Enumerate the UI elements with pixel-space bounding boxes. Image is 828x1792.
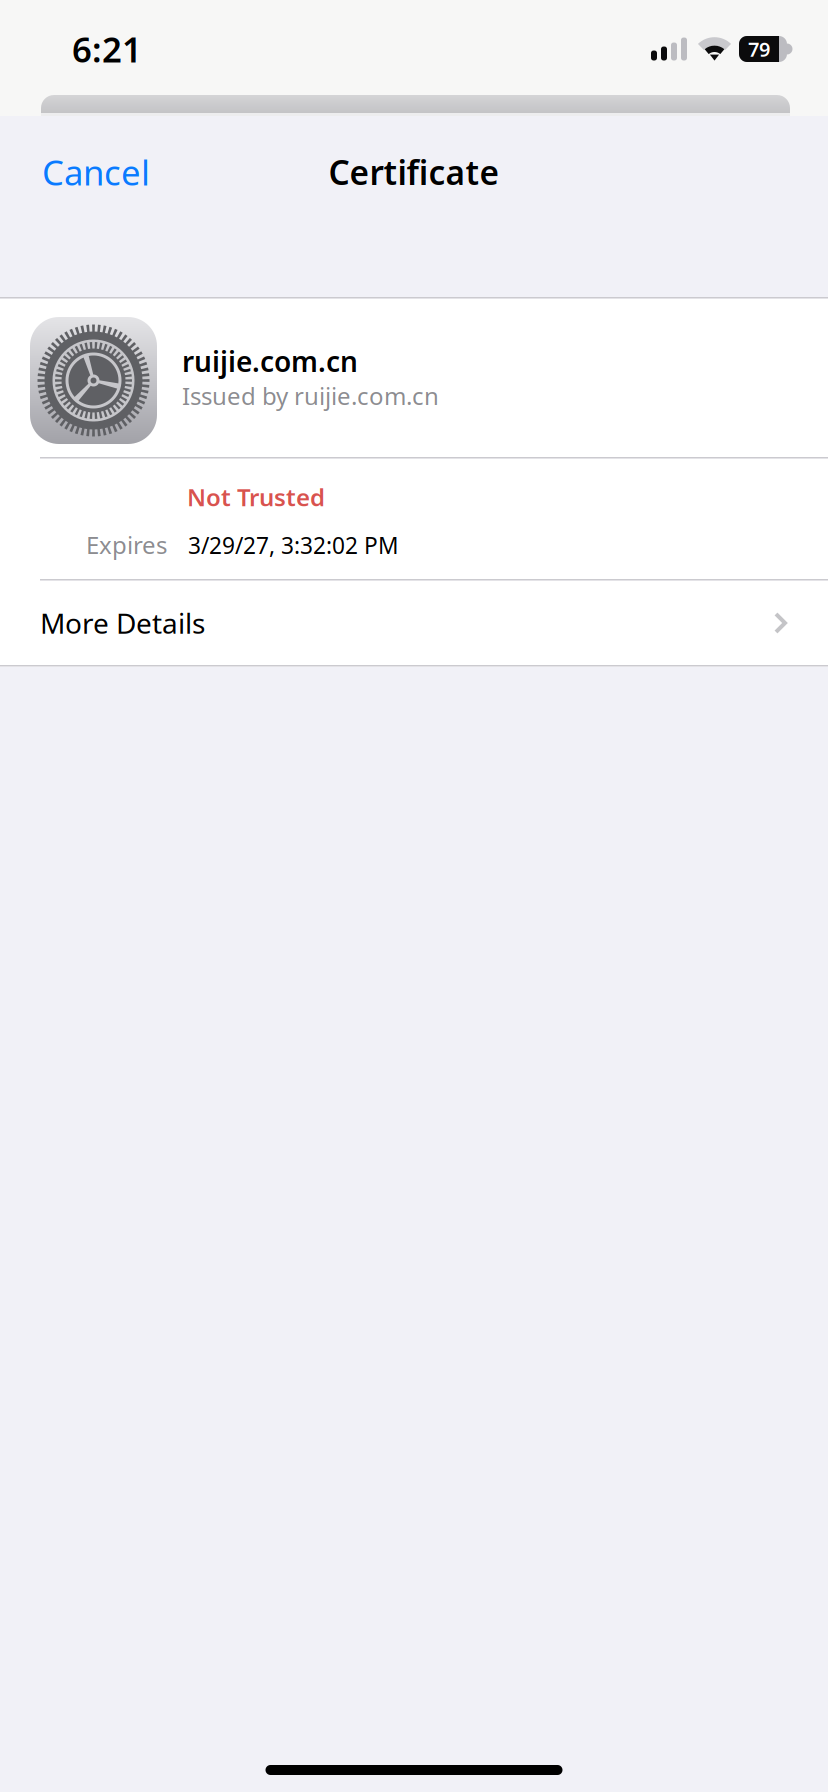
staticText: More Details — [40, 604, 205, 642]
staticText: Expires — [86, 529, 167, 561]
staticText: 79 — [748, 36, 770, 62]
staticText: ruijie.com.cn — [182, 342, 358, 380]
staticText: Cancel — [42, 149, 150, 195]
staticText: Issued by ruijie.com.cn — [182, 380, 439, 412]
staticText: 3/29/27, 3:32:02 PM — [188, 530, 399, 560]
staticText: Not Trusted — [187, 481, 325, 513]
staticText: Certificate — [328, 150, 499, 194]
button[interactable]: More Details — [0, 581, 828, 665]
button[interactable]: Cancel — [0, 127, 180, 217]
staticText: 6:21 — [72, 26, 142, 72]
